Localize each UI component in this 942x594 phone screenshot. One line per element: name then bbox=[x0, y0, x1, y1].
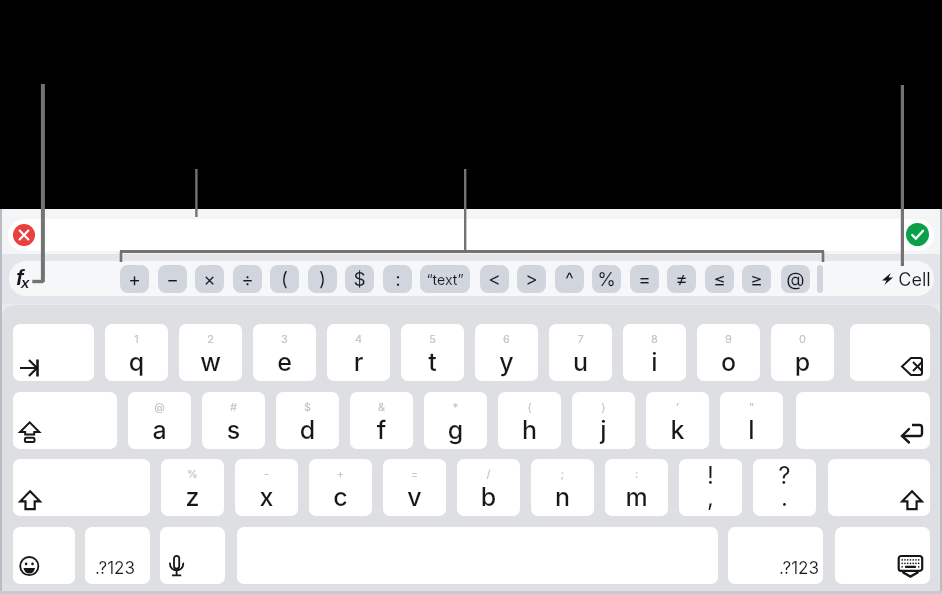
button[interactable]: % bbox=[161, 459, 224, 516]
button[interactable]: < bbox=[480, 265, 509, 293]
button[interactable]: Accept bbox=[906, 223, 929, 246]
staticText: , bbox=[679, 483, 742, 512]
button[interactable]: .?123 bbox=[728, 527, 823, 584]
button[interactable]: * bbox=[424, 392, 487, 449]
staticText: f bbox=[350, 415, 413, 445]
staticText: z bbox=[161, 482, 224, 512]
staticText: ’ bbox=[646, 400, 709, 413]
staticText: l bbox=[720, 415, 783, 445]
staticText: v bbox=[383, 482, 446, 512]
button[interactable]: $ bbox=[276, 392, 339, 449]
staticText: ) bbox=[319, 268, 326, 291]
button[interactable]: : bbox=[605, 459, 668, 516]
staticText: < bbox=[488, 268, 501, 291]
button[interactable]: Tab bbox=[13, 324, 94, 381]
staticText: * bbox=[424, 400, 487, 413]
button[interactable]: ≠ bbox=[667, 265, 696, 293]
staticText: i bbox=[623, 347, 686, 377]
button[interactable]: Shift bbox=[13, 459, 150, 516]
button[interactable]: : bbox=[383, 265, 412, 293]
staticText: 1 bbox=[105, 332, 168, 345]
staticText: 8 bbox=[623, 332, 686, 345]
button[interactable]: ) bbox=[572, 392, 635, 449]
button[interactable]: ; bbox=[531, 459, 594, 516]
staticText: 0 bbox=[771, 332, 834, 345]
button[interactable]: Return bbox=[796, 392, 930, 449]
button[interactable]: Backspace bbox=[850, 324, 930, 381]
button[interactable]: ) bbox=[308, 265, 337, 293]
button[interactable]: ? bbox=[753, 459, 816, 516]
button[interactable]: $ bbox=[345, 265, 374, 293]
staticText: $ bbox=[276, 400, 339, 413]
button[interactable]: + bbox=[120, 265, 149, 293]
button[interactable]: - bbox=[235, 459, 298, 516]
button[interactable]: = bbox=[383, 459, 446, 516]
button[interactable]: ÷ bbox=[233, 265, 262, 293]
staticText: y bbox=[475, 347, 538, 377]
button[interactable]: & bbox=[350, 392, 413, 449]
button[interactable]: + bbox=[309, 459, 372, 516]
staticText: “text” bbox=[426, 271, 464, 288]
button[interactable]: ( bbox=[270, 265, 299, 293]
button[interactable]: 7 bbox=[549, 324, 612, 381]
staticText: x bbox=[21, 274, 30, 291]
button[interactable]: ≥ bbox=[742, 265, 771, 293]
staticText: n bbox=[531, 482, 594, 512]
button[interactable]: Cell bbox=[876, 261, 934, 296]
staticText: g bbox=[424, 415, 487, 445]
button[interactable]: Functions bbox=[12, 261, 38, 296]
staticText: p bbox=[771, 347, 834, 377]
button[interactable]: Shift bbox=[828, 459, 930, 516]
staticText: q bbox=[105, 347, 168, 377]
staticText: ≤ bbox=[713, 268, 726, 291]
staticText: ( bbox=[498, 400, 561, 413]
button[interactable]: Cancel bbox=[13, 224, 35, 246]
staticText: 5 bbox=[401, 332, 464, 345]
staticText: j bbox=[572, 415, 635, 445]
button[interactable]: 5 bbox=[401, 324, 464, 381]
button[interactable]: ^ bbox=[555, 265, 584, 293]
button[interactable]: “text” bbox=[420, 265, 470, 293]
button[interactable]: % bbox=[592, 265, 621, 293]
staticText: 9 bbox=[697, 332, 760, 345]
button[interactable]: .?123 bbox=[85, 527, 150, 584]
staticText: / bbox=[457, 467, 520, 480]
button[interactable]: ( bbox=[498, 392, 561, 449]
button[interactable]: = bbox=[630, 265, 659, 293]
button[interactable]: @ bbox=[781, 265, 810, 293]
button[interactable]: × bbox=[195, 265, 224, 293]
button[interactable]: More operators bbox=[817, 265, 823, 293]
button[interactable]: 6 bbox=[475, 324, 538, 381]
button[interactable]: 3 bbox=[253, 324, 316, 381]
button[interactable]: Dictate bbox=[160, 527, 225, 584]
button[interactable]: ≤ bbox=[705, 265, 734, 293]
staticText: 4 bbox=[327, 332, 390, 345]
button[interactable]: ! bbox=[679, 459, 742, 516]
button[interactable]: / bbox=[457, 459, 520, 516]
staticText: ≥ bbox=[750, 268, 763, 291]
staticText: ≠ bbox=[675, 268, 688, 291]
button[interactable]: 8 bbox=[623, 324, 686, 381]
staticText: Cell bbox=[898, 269, 931, 291]
button[interactable]: 4 bbox=[327, 324, 390, 381]
button[interactable]: Emoji bbox=[13, 527, 75, 584]
button[interactable]: > bbox=[517, 265, 546, 293]
button[interactable]: ” bbox=[720, 392, 783, 449]
button[interactable]: 2 bbox=[179, 324, 242, 381]
staticText: = bbox=[383, 467, 446, 480]
staticText: 7 bbox=[549, 332, 612, 345]
staticText: @ bbox=[786, 268, 805, 291]
button[interactable]: # bbox=[202, 392, 265, 449]
button[interactable]: 1 bbox=[105, 324, 168, 381]
button[interactable]: 0 bbox=[771, 324, 834, 381]
button[interactable]: Hide keyboard bbox=[835, 527, 930, 584]
staticText: s bbox=[202, 415, 265, 445]
button[interactable]: @ bbox=[128, 392, 191, 449]
staticText: & bbox=[350, 400, 413, 413]
button[interactable]: 9 bbox=[697, 324, 760, 381]
staticText: % bbox=[597, 268, 616, 291]
button[interactable]: ’ bbox=[646, 392, 709, 449]
button[interactable]: − bbox=[158, 265, 187, 293]
button[interactable]: Caps lock bbox=[13, 392, 117, 449]
